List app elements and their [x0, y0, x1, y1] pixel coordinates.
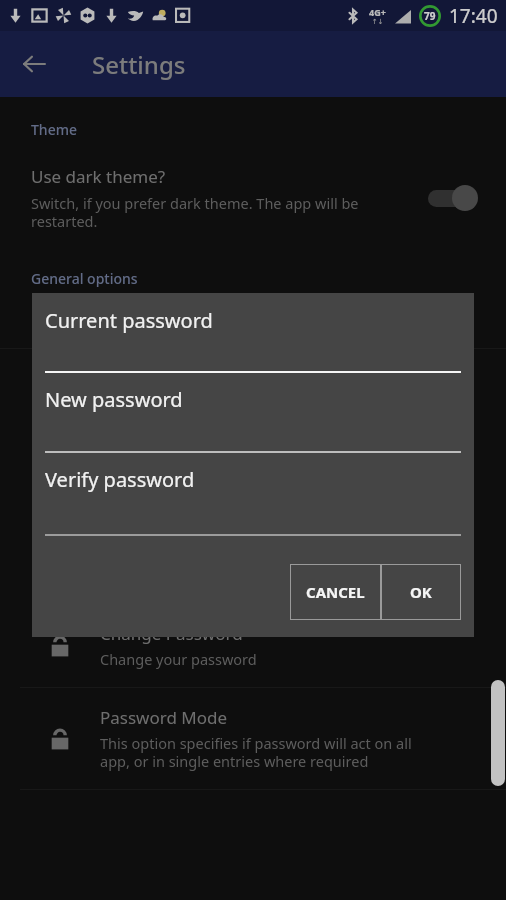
button[interactable]: Use dark theme? [0, 165, 506, 231]
staticText: Password Mode [100, 706, 228, 729]
staticText: 79 [424, 9, 436, 23]
staticText: CANCEL [306, 582, 365, 602]
staticText: This option specifies if password will a… [100, 733, 412, 771]
staticText: 17:40 [449, 3, 498, 29]
button[interactable]: Back [10, 40, 58, 88]
staticText: New password [45, 386, 183, 413]
staticText: Change Password [100, 622, 243, 645]
staticText: Switch, if you prefer dark theme. The ap… [31, 193, 359, 231]
staticText: Change your password [100, 649, 257, 669]
button[interactable]: CANCEL [290, 564, 381, 620]
button[interactable] [424, 181, 486, 215]
button[interactable]: OK [381, 564, 461, 620]
staticText: OK [410, 582, 432, 602]
button[interactable]: Password Mode [0, 688, 506, 789]
staticText: Settings [92, 48, 186, 81]
staticText: 4G+ [369, 6, 386, 18]
staticText: Use dark theme? [31, 165, 166, 188]
staticText: Current password [45, 307, 213, 334]
staticText: General options [31, 269, 138, 288]
staticText: Verify password [45, 466, 195, 493]
staticText: ↑↓ [372, 18, 384, 26]
button[interactable]: Change Password [0, 604, 506, 687]
staticText: Theme [31, 120, 77, 139]
